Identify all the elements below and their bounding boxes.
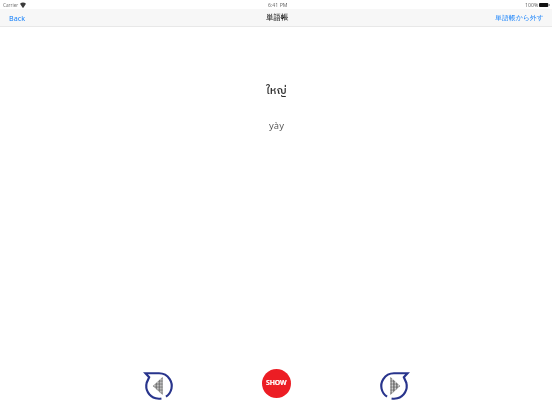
button[interactable]: Back — [7, 10, 27, 26]
staticText: ใหญ่ — [266, 82, 287, 100]
staticText: yày — [269, 119, 284, 132]
staticText: SHOW — [266, 378, 287, 387]
button[interactable]: 単語帳から外す — [493, 10, 546, 25]
staticText: 100% — [525, 1, 539, 8]
staticText: Carrier — [3, 2, 19, 8]
staticText: 単語帳から外す — [495, 13, 544, 22]
staticText: Back — [9, 13, 25, 23]
staticText: 6:41 PM — [268, 1, 288, 8]
button[interactable]: SHOW — [262, 369, 291, 398]
staticText: 単語帳 — [266, 13, 289, 22]
button[interactable]: Previous card — [145, 372, 173, 400]
button[interactable]: Next card — [380, 372, 408, 400]
